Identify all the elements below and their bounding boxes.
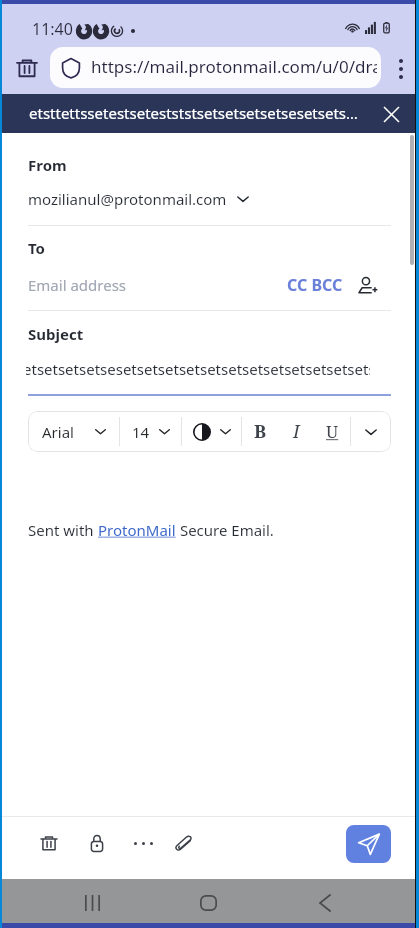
button[interactable]: Italic [278,411,314,452]
button[interactable]: Text colour [182,411,241,452]
staticText: To [28,238,45,258]
staticText: 11:40 [32,18,73,40]
button[interactable]: Bold [242,411,278,452]
button[interactable]: Delete draft [29,823,69,863]
button[interactable]: Attach file [163,823,203,863]
staticText: Arial [42,422,74,442]
button[interactable]: Back [303,887,347,919]
staticText: 14 [132,422,150,442]
staticText: U [326,420,339,443]
staticText: https://mail.protonmail.com/u/0/draft [91,55,377,78]
staticText: From [28,155,67,175]
button[interactable]: Home [186,887,230,919]
button[interactable]: Underline [314,411,350,452]
button[interactable]: Arial [28,411,119,452]
button[interactable]: ProtonMail [98,520,176,540]
button[interactable]: 14 [120,411,181,452]
button[interactable]: More actions [123,823,163,863]
staticText: Subject [28,324,84,344]
staticText: mozilianul@protonmail.com [28,189,227,209]
button[interactable]: mozilianul@protonmail.com [28,189,250,209]
button[interactable]: CC BCC [287,272,343,298]
staticText: Secure Email. [176,520,274,540]
staticText: CC BCC [287,274,343,296]
staticText: B [254,419,267,444]
button[interactable]: https://mail.protonmail.com/u/0/draft [50,47,381,88]
button[interactable]: Send [346,825,391,863]
button[interactable]: Recent apps [70,887,114,919]
staticText: Email address [28,275,287,295]
button[interactable]: Delete [11,51,43,86]
staticText: Sent with [28,520,98,540]
button[interactable]: Close tab [375,98,407,130]
staticText: ProtonMail [98,520,176,540]
button[interactable]: More formatting [351,411,391,452]
button[interactable]: Encryption [77,823,117,863]
staticText: etsetsetsetsesetsetsetsetsetsetsetsetset… [26,359,370,379]
staticText: I [293,419,300,444]
button[interactable]: More options [385,50,417,87]
button[interactable]: Add contact [356,274,378,296]
staticText: etsttettssetestsetestststsetsetsetsetses… [29,103,360,123]
